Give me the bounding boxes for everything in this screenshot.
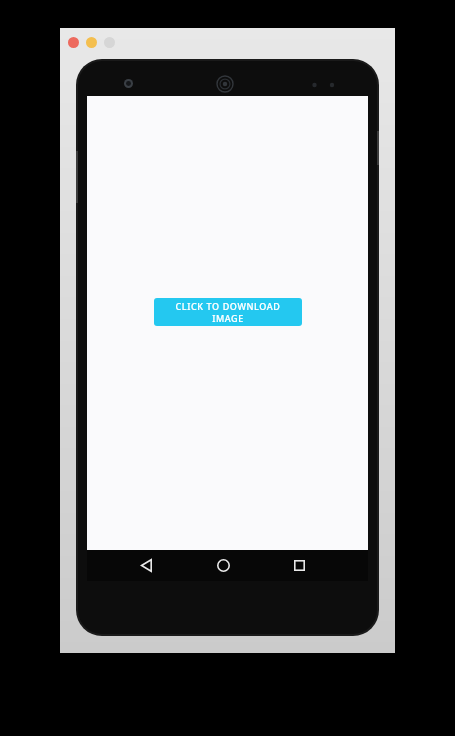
button[interactable]: CLICK TO DOWNLOAD IMAGE	[154, 298, 302, 326]
button[interactable]: Back	[115, 550, 177, 581]
button[interactable]: Home	[192, 550, 254, 581]
staticText: CLICK TO DOWNLOAD IMAGE	[162, 300, 294, 324]
button[interactable]: Minimize window	[86, 37, 97, 48]
button[interactable]: Recent apps	[268, 550, 330, 581]
button[interactable]: Zoom window	[104, 37, 115, 48]
button[interactable]: Close window	[68, 37, 79, 48]
